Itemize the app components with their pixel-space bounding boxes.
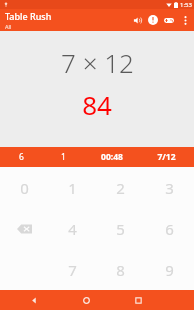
- staticText: 9: [165, 260, 174, 280]
- staticText: 4: [68, 219, 77, 239]
- button[interactable]: Information: [145, 9, 161, 31]
- button[interactable]: 6: [145, 208, 194, 249]
- button[interactable]: 9: [145, 249, 194, 290]
- button[interactable]: 8: [96, 249, 145, 290]
- button[interactable]: 7: [48, 249, 96, 290]
- button[interactable]: 1: [48, 167, 96, 208]
- staticText: All: [5, 23, 12, 30]
- button[interactable]: 4: [48, 208, 96, 249]
- button[interactable]: More options: [177, 9, 193, 31]
- staticText: 0: [20, 178, 29, 198]
- staticText: 8: [116, 260, 125, 280]
- staticText: 7/12: [157, 151, 176, 163]
- staticText: 1: [68, 178, 77, 198]
- staticText: 1:53: [180, 1, 192, 9]
- staticText: Table Rush: [5, 10, 52, 22]
- staticText: 3: [165, 178, 174, 198]
- button[interactable]: 2: [96, 167, 145, 208]
- staticText: 84: [82, 87, 112, 122]
- button[interactable]: 3: [145, 167, 194, 208]
- staticText: 00:48: [101, 151, 123, 163]
- staticText: 1: [61, 151, 66, 163]
- staticText: 6: [19, 151, 24, 163]
- button[interactable]: Sound: [129, 9, 145, 31]
- button[interactable]: Backspace: [0, 208, 48, 249]
- staticText: 5: [116, 219, 125, 239]
- button[interactable]: 0: [0, 167, 48, 208]
- staticText: 7 × 12: [61, 45, 134, 80]
- button[interactable]: Home: [75, 290, 97, 310]
- staticText: 6: [165, 219, 174, 239]
- staticText: 2: [116, 178, 125, 198]
- button[interactable]: Recent apps: [127, 290, 149, 310]
- button[interactable]: Leaderboard: [161, 9, 177, 31]
- staticText: 7: [68, 260, 77, 280]
- button[interactable]: 5: [96, 208, 145, 249]
- button[interactable]: Back: [23, 290, 45, 310]
